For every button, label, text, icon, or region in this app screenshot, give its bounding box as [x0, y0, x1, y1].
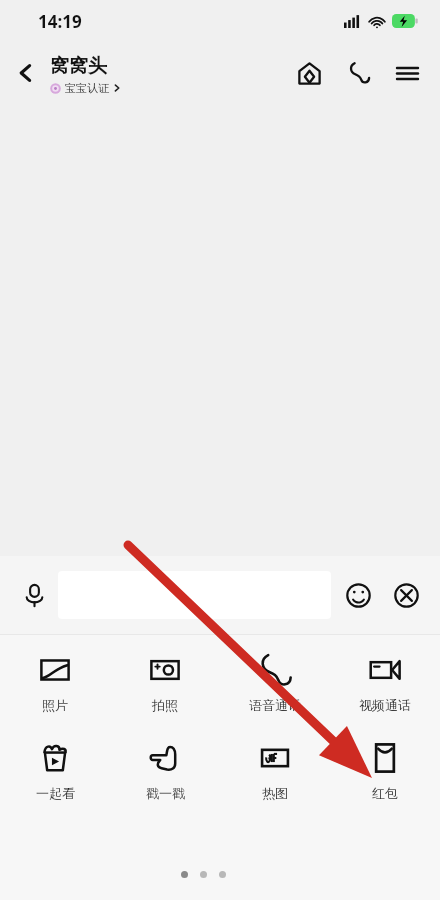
- staticText: 拍照: [152, 697, 178, 713]
- button[interactable]: Home group: [290, 54, 328, 92]
- button[interactable]: 拍照: [110, 653, 220, 713]
- button[interactable]: Call: [340, 54, 378, 92]
- button[interactable]: 红包: [330, 741, 440, 801]
- button[interactable]: Emoji: [338, 575, 378, 615]
- staticText: 视频通话: [359, 697, 411, 713]
- staticText: 宝宝认证: [65, 81, 109, 95]
- staticText: 戳一戳: [146, 785, 185, 801]
- button[interactable]: Close panel: [386, 575, 426, 615]
- button[interactable]: 热图: [220, 741, 330, 801]
- button[interactable]: Back: [4, 51, 48, 95]
- staticText: 语音通话: [249, 697, 301, 713]
- staticText: 红包: [372, 785, 398, 801]
- staticText: 14:19: [38, 10, 82, 33]
- button[interactable]: 一起看: [0, 741, 110, 801]
- staticText: 一起看: [36, 785, 75, 801]
- button[interactable]: 视频通话: [330, 653, 440, 713]
- button[interactable]: 语音通话: [220, 653, 330, 713]
- button[interactable]: Voice input: [12, 573, 56, 617]
- button[interactable]: Menu: [388, 54, 426, 92]
- staticText: 窝窝头: [50, 54, 107, 78]
- button[interactable]: [58, 571, 331, 619]
- button[interactable]: 戳一戳: [110, 741, 220, 801]
- staticText: 热图: [262, 785, 288, 801]
- staticText: 照片: [42, 697, 68, 713]
- button[interactable]: 宝宝认证: [50, 81, 121, 95]
- button[interactable]: 照片: [0, 653, 110, 713]
